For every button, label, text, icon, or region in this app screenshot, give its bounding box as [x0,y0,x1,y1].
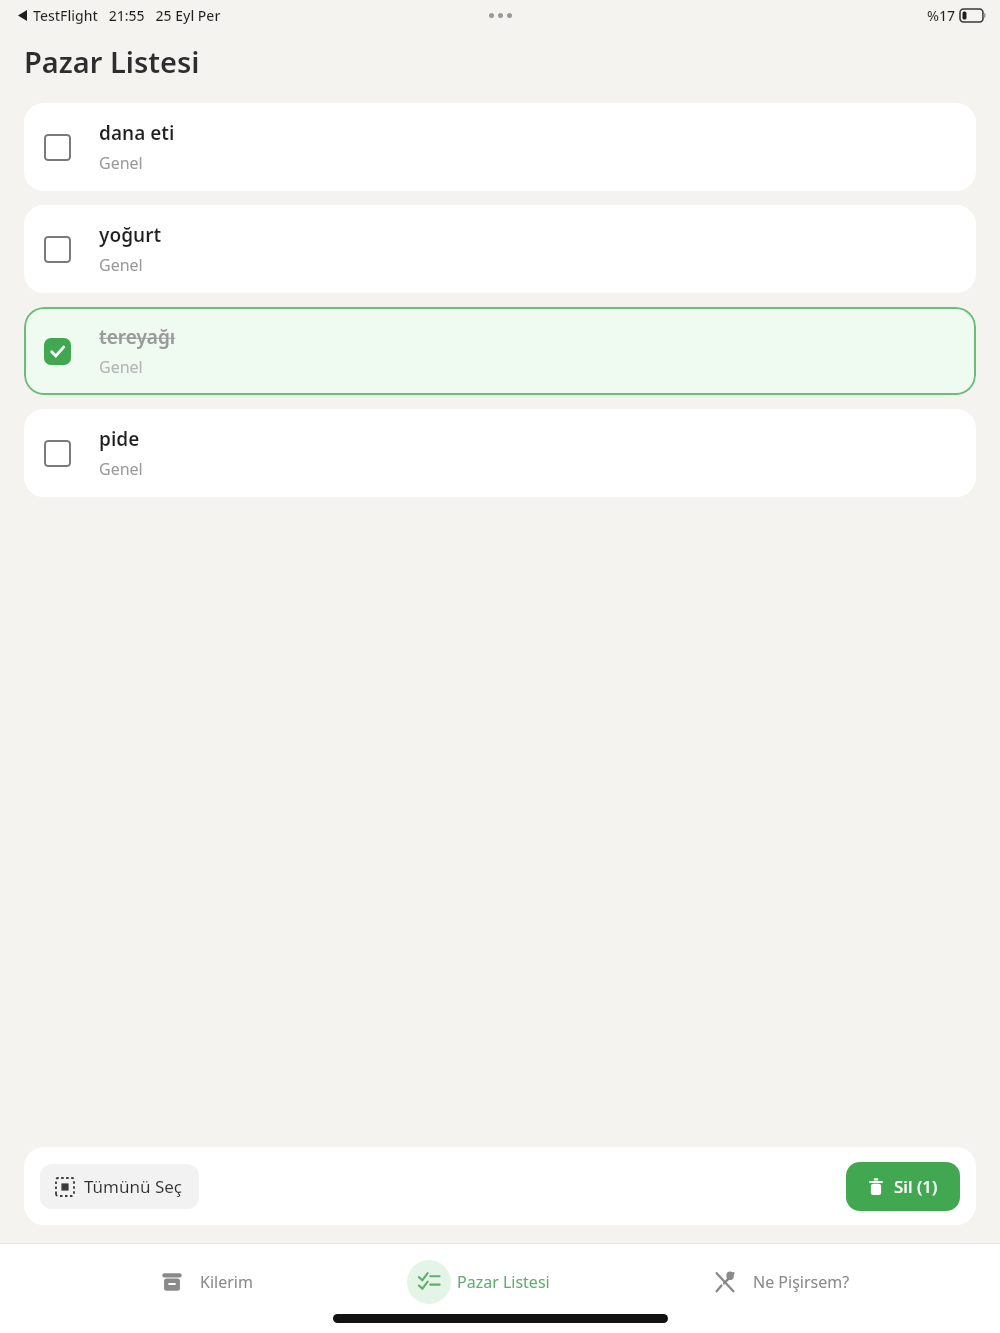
staticText: TestFlight 21:55 25 Eyl Per [33,6,221,25]
button[interactable]: Kilerim [146,1260,257,1304]
staticText: Pazar Listesi [457,1271,550,1293]
button[interactable]: Checkbox pide [24,409,976,497]
staticText: Pazar Listesi [24,42,200,81]
button[interactable]: Pazar Listesi [403,1260,554,1304]
staticText: Sil (1) [894,1175,938,1198]
button[interactable]: Checkbox yoğurt [44,236,71,263]
staticText: Ne Pişirsem? [753,1271,850,1293]
staticText: Genel [99,458,143,480]
staticText: pide [99,426,140,452]
staticText: Genel [99,254,143,276]
button[interactable]: Checkbox yoğurt [24,205,976,293]
staticText: Tümünü Seç [84,1175,183,1198]
staticText: dana eti [99,120,175,146]
button[interactable]: Checkbox tereyağı [24,307,976,395]
staticText: tereyağı [99,324,176,350]
button[interactable]: Checkbox tereyağı [44,338,71,365]
staticText: Genel [99,356,143,378]
button[interactable]: Checkbox pide [44,440,71,467]
button[interactable]: Ne Pişirsem? [699,1260,854,1304]
staticText: Kilerim [200,1271,253,1293]
staticText: Genel [99,152,143,174]
button[interactable]: Checkbox dana eti [44,134,71,161]
button[interactable]: Checkbox dana eti [24,103,976,191]
button[interactable]: Sil (1) [846,1162,960,1211]
button[interactable]: Tümünü Seç [40,1164,199,1209]
staticText: %17 [927,6,955,25]
staticText: yoğurt [99,222,162,248]
